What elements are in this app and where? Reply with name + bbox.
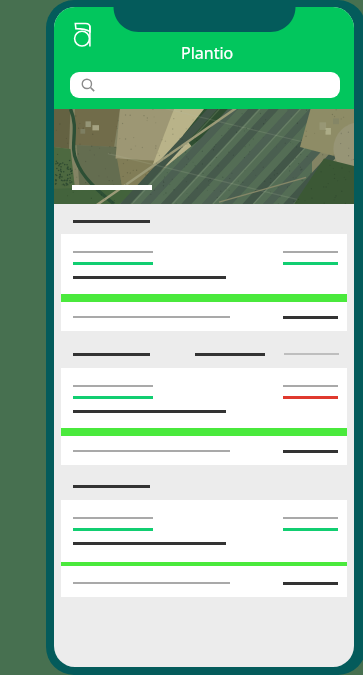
other: Plantio logo bbox=[72, 23, 90, 49]
button[interactable] bbox=[54, 331, 354, 368]
button[interactable] bbox=[61, 234, 347, 331]
button[interactable] bbox=[61, 500, 347, 597]
staticText: Plantio bbox=[181, 42, 234, 64]
button[interactable]: Search bbox=[70, 72, 340, 98]
button[interactable] bbox=[61, 368, 347, 465]
button[interactable] bbox=[54, 465, 354, 500]
button[interactable] bbox=[54, 204, 354, 234]
button[interactable]: Field satellite map bbox=[54, 109, 354, 204]
